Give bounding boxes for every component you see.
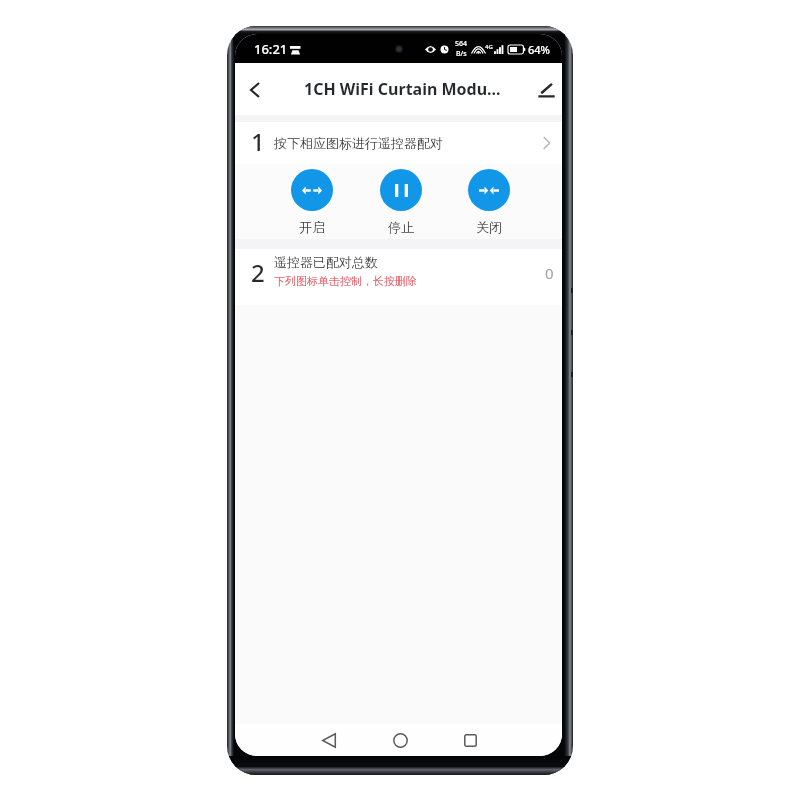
staticText: B/s xyxy=(456,49,467,59)
staticText: 按下相应图标进行遥控器配对 xyxy=(274,135,443,151)
staticText: 64% xyxy=(528,42,550,57)
staticText: 开启 xyxy=(299,219,325,235)
button[interactable]: Home xyxy=(385,725,415,755)
staticText: 下列图标单击控制，长按删除 xyxy=(274,274,417,288)
button[interactable]: Back xyxy=(314,725,344,755)
button[interactable]: Edit xyxy=(529,72,562,106)
staticText: 2 xyxy=(251,256,265,289)
staticText: 0 xyxy=(545,263,554,283)
button[interactable]: 停止 xyxy=(380,169,422,235)
button[interactable]: 1 xyxy=(235,122,562,164)
staticText: 停止 xyxy=(388,219,414,235)
staticText: 1CH WiFi Curtain Modu... xyxy=(304,78,501,100)
staticText: 16:21 xyxy=(254,40,288,58)
staticText: 1 xyxy=(251,125,265,158)
button[interactable]: 开启 xyxy=(291,169,333,235)
button[interactable]: 关闭 xyxy=(468,169,510,235)
staticText: 关闭 xyxy=(476,219,502,235)
button[interactable]: Back xyxy=(237,72,272,107)
staticText: 4G xyxy=(485,43,493,51)
button[interactable]: 2 xyxy=(235,249,562,305)
staticText: 遥控器已配对总数 xyxy=(274,254,378,270)
button[interactable]: Recents xyxy=(455,725,485,755)
staticText: 564 xyxy=(455,39,468,49)
